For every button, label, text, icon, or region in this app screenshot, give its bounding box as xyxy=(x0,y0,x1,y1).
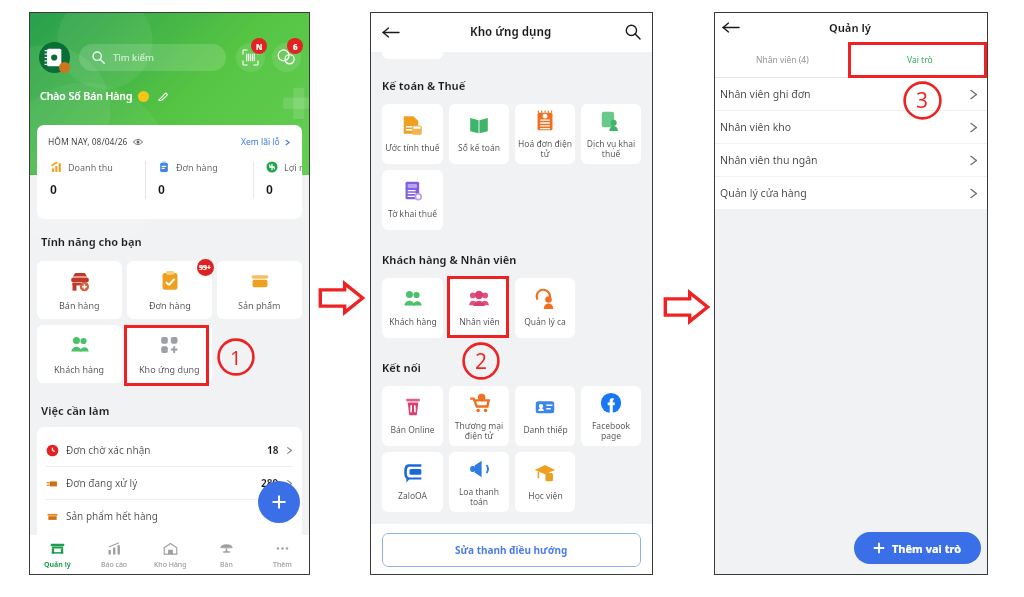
staticText: 3 xyxy=(916,86,929,115)
staticText: Nhân viên kho xyxy=(720,120,792,134)
button[interactable]: Facebook page xyxy=(581,386,641,446)
staticText: Loa thanh toán xyxy=(451,486,507,507)
staticText: 1 xyxy=(230,344,242,371)
button[interactable]: Add xyxy=(258,481,300,523)
staticText: Khách hàng xyxy=(389,316,437,328)
button[interactable]: Sản phẩm xyxy=(217,261,302,319)
staticText: Sổ kế toán xyxy=(458,142,500,154)
staticText: Thương mại điện tử xyxy=(451,420,507,441)
staticText: 289 xyxy=(261,476,279,490)
staticText: 99+ xyxy=(199,263,212,273)
button[interactable]: Search xyxy=(619,21,641,43)
staticText: Kho ứng dụng xyxy=(139,363,200,375)
staticText: ZaloOA xyxy=(398,490,427,502)
staticText: N xyxy=(256,41,263,52)
staticText: Chào Số Bán Hàng xyxy=(40,89,133,103)
button[interactable]: Kho Hàng xyxy=(142,535,198,575)
button[interactable]: Back xyxy=(382,21,404,43)
staticText: 2 xyxy=(475,347,488,376)
staticText: Kho ứng dụng xyxy=(470,24,552,40)
button[interactable]: Scan barcode xyxy=(236,43,265,72)
staticText: Quản lý cửa hàng xyxy=(720,186,807,200)
staticText: Facebook page xyxy=(583,420,639,441)
staticText: Xem lãi lỗ xyxy=(241,136,280,148)
staticText: HÔM NAY, 08/04/26 xyxy=(48,136,128,148)
staticText: Thêm xyxy=(273,560,292,570)
staticText: Bàn xyxy=(220,560,233,570)
staticText: 0 xyxy=(50,181,57,197)
staticText: Tìm kiếm xyxy=(113,51,154,64)
staticText: Danh thiếp xyxy=(523,424,568,436)
staticText: Khách hàng & Nhân viên xyxy=(382,252,517,267)
button[interactable]: Bàn xyxy=(198,535,254,575)
button[interactable]: Hoá đơn điện tử xyxy=(515,104,575,164)
button[interactable]: Nhân viên thu ngân xyxy=(714,144,988,176)
staticText: Dịch vụ khai thuế xyxy=(583,138,639,159)
button[interactable]: Tìm kiếm xyxy=(79,44,226,71)
button[interactable]: Danh thiếp xyxy=(515,386,575,446)
staticText: Khách hàng xyxy=(54,363,105,375)
staticText: Quản lý xyxy=(44,560,71,570)
staticText: Quản lý ca xyxy=(524,316,566,328)
staticText: Tờ khai thuế xyxy=(388,208,437,220)
button[interactable]: Khách hàng xyxy=(37,325,122,383)
staticText: Nhân viên xyxy=(459,316,500,328)
button[interactable]: Đơn hàng xyxy=(127,261,212,319)
staticText: 6 xyxy=(293,41,298,52)
staticText: Nhân viên (4) xyxy=(756,54,809,66)
staticText: Nhân viên thu ngân xyxy=(720,153,818,167)
button[interactable]: Thêm vai trò xyxy=(854,532,981,564)
button[interactable]: Học viện xyxy=(515,452,575,512)
staticText: Bán Online xyxy=(390,424,435,436)
button[interactable]: ZaloOA xyxy=(382,452,443,512)
staticText: Báo cáo xyxy=(101,560,128,570)
button[interactable]: Đơn chờ xác nhận xyxy=(37,434,302,466)
button[interactable]: Đơn đang xử lý xyxy=(37,467,302,499)
staticText: 18 xyxy=(267,443,279,457)
button[interactable]: Kho ứng dụng xyxy=(127,325,212,383)
staticText: 0 xyxy=(266,181,273,197)
staticText: Vai trò xyxy=(907,54,933,66)
button[interactable]: Nhân viên xyxy=(449,278,509,338)
button[interactable]: Ước tính thuế xyxy=(382,104,443,164)
staticText: Thêm vai trò xyxy=(892,541,962,556)
button[interactable]: Messages xyxy=(272,43,301,72)
staticText: Đơn đang xử lý xyxy=(66,476,138,490)
staticText: Đơn hàng xyxy=(176,161,218,173)
staticText: Lợi nhuận xyxy=(284,161,302,173)
staticText: Sản phẩm xyxy=(238,299,281,311)
button[interactable]: Dịch vụ khai thuế xyxy=(581,104,641,164)
button[interactable]: Thương mại điện tử xyxy=(449,386,509,446)
staticText: Ước tính thuế xyxy=(385,142,440,154)
staticText: 0 xyxy=(158,181,165,197)
staticText: Học viện xyxy=(528,490,563,502)
button[interactable]: Bán Online xyxy=(382,386,443,446)
button[interactable]: Tờ khai thuế xyxy=(382,170,443,230)
button[interactable]: Nhân viên kho xyxy=(714,111,988,143)
staticText: Kho Hàng xyxy=(154,560,187,570)
button[interactable]: Nhân viên ghi đơn xyxy=(714,78,988,110)
staticText: 2 xyxy=(273,509,279,523)
button[interactable]: Quản lý cửa hàng xyxy=(714,177,988,209)
button[interactable]: Back xyxy=(722,16,744,38)
staticText: Tính năng cho bạn xyxy=(41,234,142,249)
staticText: Nhân viên ghi đơn xyxy=(720,87,811,101)
button[interactable]: Bán hàng xyxy=(37,261,122,319)
button[interactable]: Sản phẩm hết hàng xyxy=(37,500,302,532)
button[interactable]: Thêm xyxy=(254,535,310,575)
button[interactable]: Sửa thanh điều hướng xyxy=(382,533,641,567)
button[interactable]: Sổ kế toán xyxy=(449,104,509,164)
button[interactable]: Báo cáo xyxy=(86,535,142,575)
staticText: Bán hàng xyxy=(59,299,100,311)
button[interactable]: Quản lý ca xyxy=(515,278,575,338)
staticText: Quản lý xyxy=(829,20,872,35)
button[interactable]: Nhân viên (4) xyxy=(714,42,851,77)
staticText: Đơn hàng xyxy=(149,299,191,311)
button[interactable]: Khách hàng xyxy=(382,278,443,338)
button[interactable]: Vai trò xyxy=(851,42,988,77)
staticText: Đơn chờ xác nhận xyxy=(66,443,151,457)
button[interactable]: Quản lý xyxy=(29,535,86,575)
button[interactable]: Loa thanh toán xyxy=(449,452,509,512)
staticText: Kế toán & Thuế xyxy=(382,78,466,93)
staticText: Sản phẩm hết hàng xyxy=(66,509,158,523)
